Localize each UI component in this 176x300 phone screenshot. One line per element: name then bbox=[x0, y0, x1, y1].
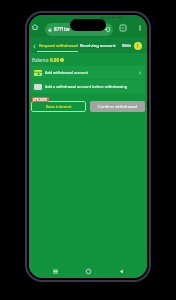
staticText: 87f1be bbox=[54, 26, 70, 33]
button[interactable]: Home bbox=[81, 264, 95, 278]
button[interactable]: 87f1be bbox=[45, 23, 113, 36]
button[interactable]: Home bbox=[30, 22, 40, 32]
staticText: Earn interest bbox=[46, 104, 72, 110]
button[interactable]: With bbox=[120, 40, 134, 51]
staticText: Receiving account bbox=[80, 43, 116, 49]
staticText: With bbox=[122, 43, 132, 49]
staticText: Confirm withdrawal bbox=[98, 104, 137, 110]
staticText: ! bbox=[137, 43, 139, 50]
staticText: Balance bbox=[32, 57, 50, 63]
button[interactable]: Add a withdrawal account before withdraw… bbox=[31, 80, 145, 93]
staticText: 0.00 bbox=[50, 57, 59, 63]
button[interactable]: Profile bbox=[132, 40, 144, 52]
staticText: Add withdrawal account bbox=[45, 70, 88, 75]
button[interactable]: Back bbox=[30, 42, 39, 51]
button[interactable]: Confirm withdrawal bbox=[90, 101, 145, 112]
button[interactable]: Recent apps bbox=[48, 264, 62, 278]
button[interactable]: Add withdrawal account bbox=[31, 66, 145, 79]
button[interactable]: Receiving account bbox=[78, 40, 118, 51]
button[interactable]: Request withdrawal bbox=[37, 40, 80, 51]
button[interactable]: Earn interest bbox=[31, 101, 86, 112]
staticText: Add a withdrawal account before withdraw… bbox=[45, 84, 128, 89]
button[interactable]: More options bbox=[135, 23, 145, 33]
button[interactable]: Back bbox=[114, 264, 128, 278]
button[interactable]: Tabs bbox=[118, 23, 128, 33]
staticText: APR 200% bbox=[33, 98, 48, 102]
staticText: Request withdrawal bbox=[39, 43, 78, 49]
